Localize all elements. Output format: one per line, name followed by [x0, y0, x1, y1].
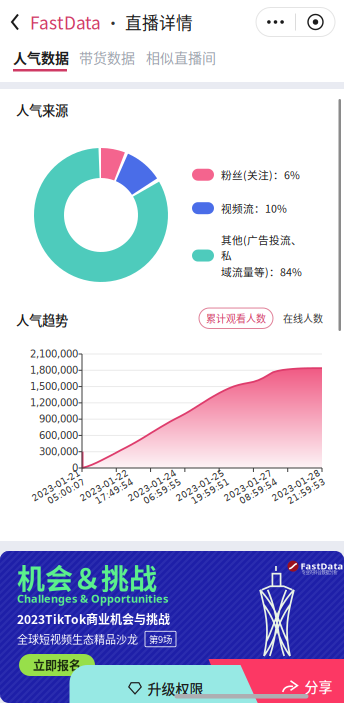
staticText: 2023-01-27 [224, 481, 278, 491]
button[interactable]: 累计观看人数 [199, 308, 273, 328]
staticText: 累计观看人数 [206, 311, 266, 325]
staticText: 17:49:54 [92, 491, 134, 501]
staticText: 机会＆挑战 [17, 557, 157, 597]
staticText: 08:59:54 [236, 491, 278, 501]
staticText: 其他(广告投流、私 [221, 232, 302, 263]
staticText: 900,000 [39, 413, 78, 425]
staticText: 全球短视频生态精品沙龙 [17, 631, 138, 647]
button[interactable]: 2023 TikTok business opportunities banne… [0, 551, 344, 703]
staticText: 升级权限 [147, 678, 203, 698]
button[interactable]: 升级权限 [69, 665, 259, 703]
button[interactable]: Back [0, 0, 30, 44]
staticText: 人气数据 [13, 47, 69, 67]
staticText: 1,500,000 [30, 381, 78, 392]
button[interactable]: 带货数据 [79, 47, 145, 81]
staticText: 2023TikTok商业机会与挑战 [17, 610, 170, 627]
button[interactable]: 在线人数 [283, 308, 323, 328]
staticText: 人气来源 [16, 100, 68, 119]
button[interactable]: 相似直播间 [146, 47, 226, 81]
staticText: 06:59:55 [140, 491, 182, 501]
staticText: 19:59:51 [188, 491, 230, 501]
staticText: 立即报名 [33, 656, 81, 674]
button[interactable]: Close [296, 8, 335, 36]
staticText: 视频流：10% [221, 200, 287, 216]
staticText: Challenges & Opportunities [17, 591, 168, 606]
staticText: 直播详情 [125, 10, 193, 34]
staticText: 人气趋势 [16, 310, 68, 329]
staticText: FastData [300, 560, 343, 572]
staticText: 粉丝(关注)：6% [221, 167, 300, 182]
button[interactable]: 分享 [208, 659, 344, 703]
staticText: 第9场 [149, 632, 172, 646]
staticText: 21:59:53 [284, 491, 326, 501]
staticText: 600,000 [39, 430, 78, 441]
staticText: 2023-01-22 [80, 481, 134, 491]
staticText: 域流量等)：84% [221, 264, 302, 279]
staticText: 2023-01-25 [176, 481, 230, 491]
staticText: 在线人数 [283, 311, 323, 325]
staticText: 2,100,000 [30, 348, 78, 360]
staticText: 2023-01-24 [128, 481, 182, 491]
staticText: 1,200,000 [30, 397, 78, 409]
staticText: 2023-01-21 [32, 481, 86, 491]
staticText: 300,000 [39, 446, 78, 457]
button[interactable]: 人气数据 [13, 47, 79, 81]
staticText: · [101, 10, 125, 34]
button[interactable]: More [256, 8, 295, 36]
staticText: 1,800,000 [30, 364, 78, 376]
staticText: 2023-01-28 [272, 481, 326, 491]
staticText: 0 [72, 462, 78, 474]
staticText: FastData [30, 9, 101, 35]
staticText: 相似直播间 [146, 47, 216, 67]
staticText: 专业的抖音数据分析 [301, 569, 337, 575]
staticText: 05:00:07 [44, 491, 86, 501]
staticText: 带货数据 [79, 47, 135, 67]
staticText: 分享 [304, 676, 332, 696]
